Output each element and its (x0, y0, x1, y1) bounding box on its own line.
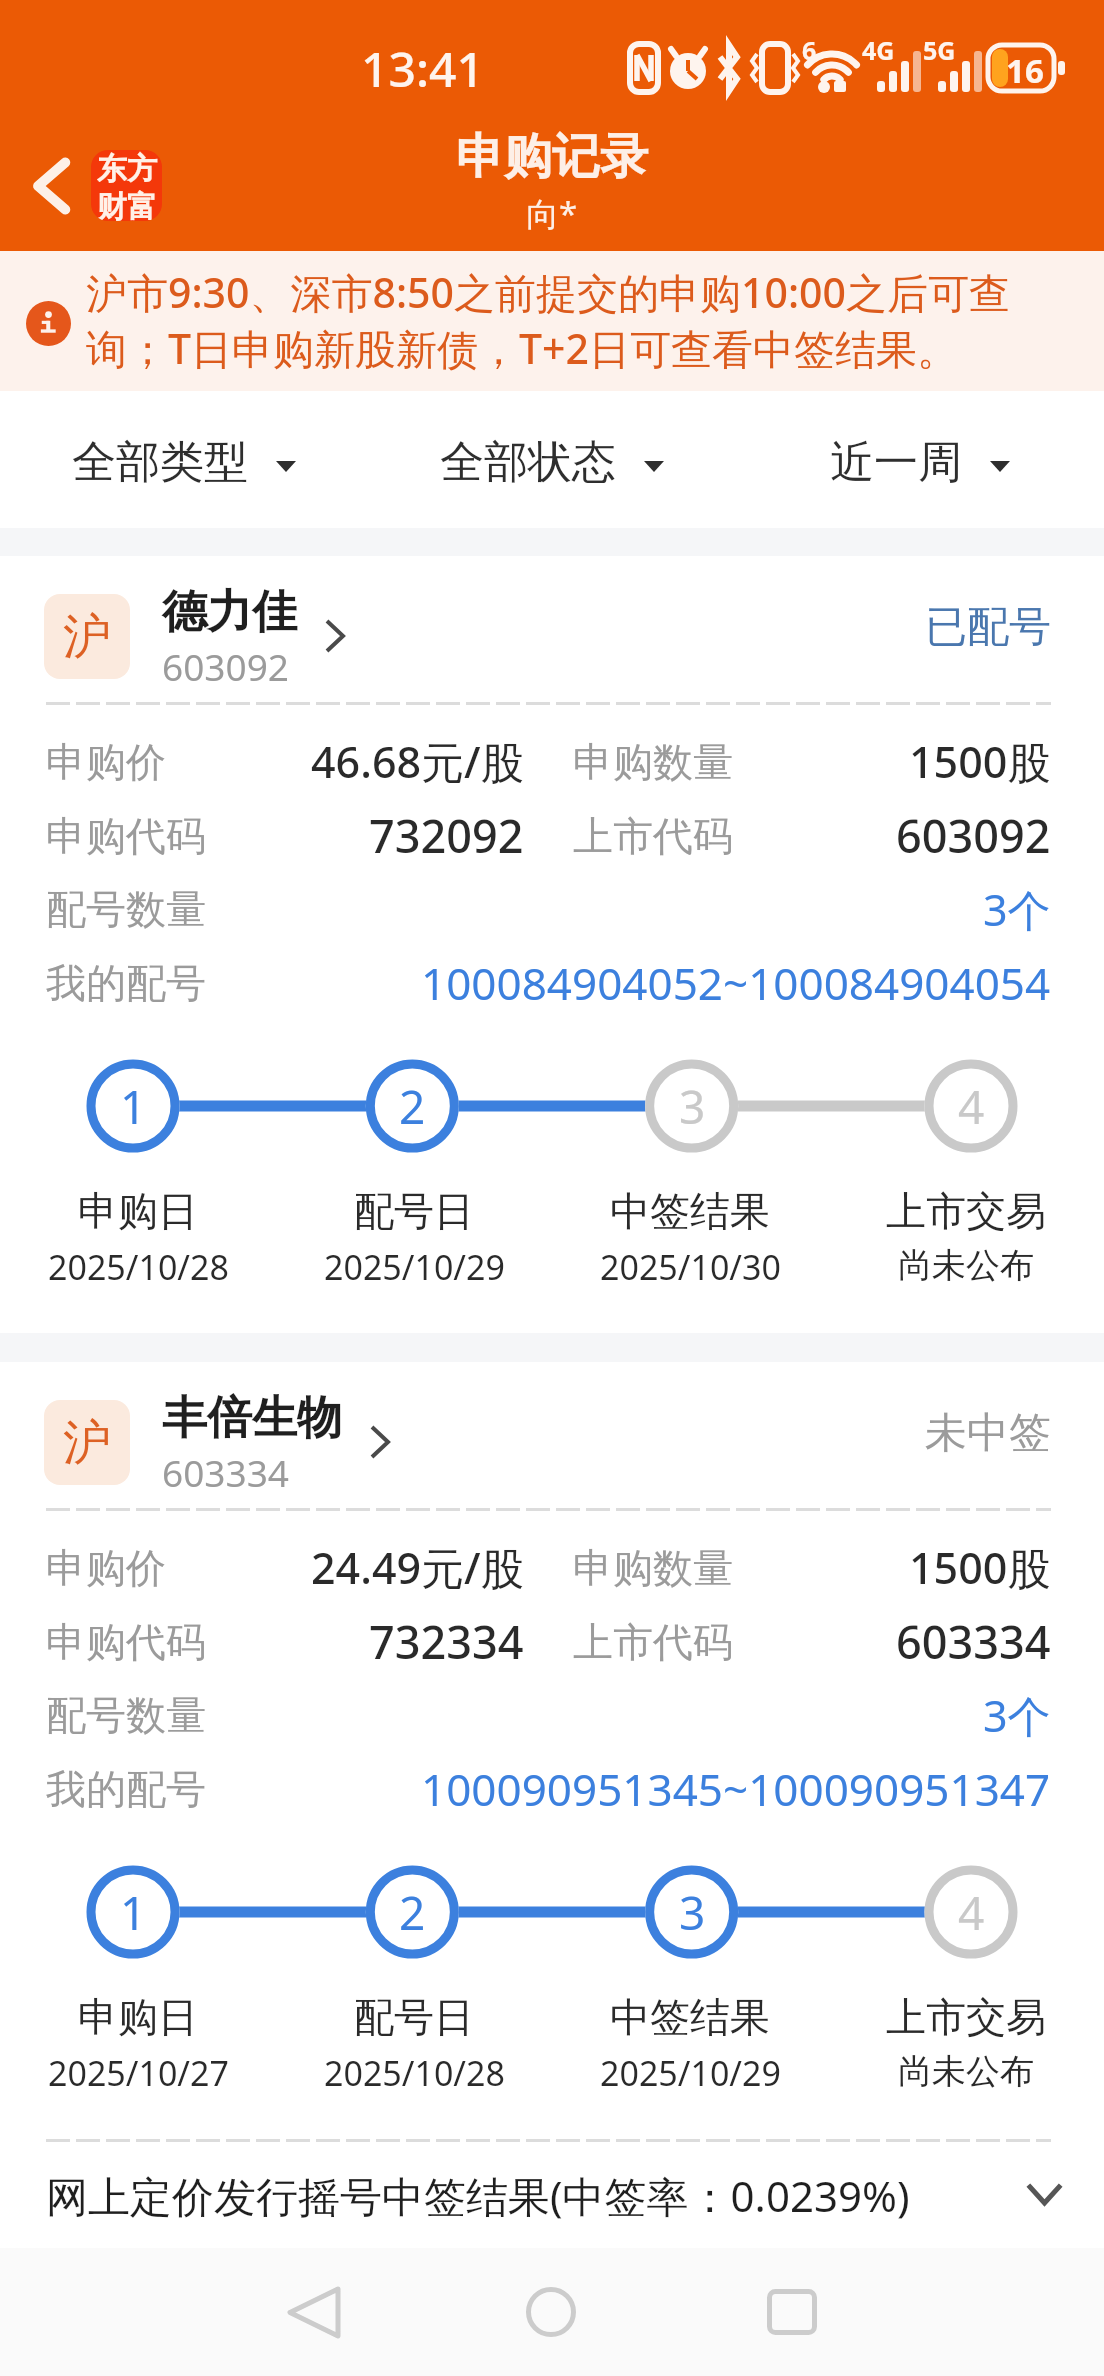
staticText: 配号日 (354, 1186, 474, 1236)
button[interactable]: Back (261, 2263, 365, 2361)
staticText: 603092 (162, 641, 289, 689)
staticText: 4G (862, 33, 895, 67)
staticText: 申购价 (46, 737, 166, 787)
staticText: 申购价 (46, 1543, 166, 1593)
staticText: 3 (679, 1075, 706, 1138)
staticText: 4 (958, 1075, 985, 1138)
staticText: 2025/10/29 (600, 2050, 781, 2096)
staticText: 全部类型 (72, 435, 248, 490)
staticText: 16 (1006, 48, 1044, 93)
staticText: 2025/10/29 (324, 1244, 505, 1290)
button[interactable]: Recent apps (740, 2264, 844, 2360)
staticText: 732092 (369, 805, 524, 866)
staticText: 德力佳 (162, 584, 297, 641)
staticText: 配号日 (354, 1992, 474, 2042)
staticText: 3 (679, 1881, 706, 1944)
staticText: 申购代码 (46, 1617, 206, 1667)
button[interactable]: 沪 (46, 1390, 1051, 1495)
staticText: 732334 (369, 1611, 524, 1672)
button[interactable]: 沪 (46, 584, 1051, 689)
staticText: 网上定价发行摇号中签结果(中签率：0.0239%) (46, 2167, 910, 2224)
staticText: 东方 (97, 150, 157, 188)
staticText: 沪 (63, 607, 111, 667)
staticText: 申购记录 (456, 127, 648, 187)
staticText: 配号数量 (46, 1690, 206, 1740)
staticText: 询；T日申购新股新债，T+2日可查看中签结果。 (86, 320, 958, 376)
button[interactable]: 近一周 (736, 391, 1104, 528)
staticText: 603334 (162, 1447, 289, 1495)
staticText: 中签结果 (610, 1186, 770, 1236)
staticText: 中签结果 (610, 1992, 770, 2042)
staticText: 申购日 (78, 1186, 198, 1236)
staticText: 申购日 (78, 1992, 198, 2042)
staticText: 1500股 (909, 732, 1051, 791)
staticText: 2025/10/27 (48, 2050, 229, 2096)
staticText: 上市代码 (573, 811, 733, 861)
staticText: 2025/10/28 (48, 1244, 229, 1290)
staticText: 100084904052~100084904054 (421, 953, 1051, 1013)
staticText: 2 (399, 1881, 426, 1944)
button[interactable]: 网上定价发行摇号中签结果(中签率：0.0239%) (46, 2142, 1058, 2248)
staticText: 3个 (983, 880, 1051, 939)
staticText: 近一周 (830, 435, 962, 490)
staticText: 申购数量 (573, 1543, 733, 1593)
button[interactable]: Home (499, 2264, 603, 2360)
staticText: 1 (120, 1075, 147, 1138)
staticText: 6 (802, 33, 817, 67)
button[interactable]: 全部状态 (368, 391, 736, 528)
staticText: 5G (923, 33, 956, 67)
staticText: 4 (958, 1881, 985, 1944)
staticText: 申购数量 (573, 737, 733, 787)
staticText: 向* (526, 191, 578, 236)
staticText: 未中签 (925, 1407, 1051, 1460)
staticText: 我的配号 (46, 958, 206, 1008)
staticText: 2025/10/30 (600, 1244, 781, 1290)
staticText: 申购代码 (46, 811, 206, 861)
staticText: 上市代码 (573, 1617, 733, 1667)
staticText: 603092 (896, 805, 1051, 866)
staticText: 尚未公布 (898, 1244, 1034, 1287)
button[interactable]: 全部类型 (0, 391, 368, 528)
staticText: 我的配号 (46, 1764, 206, 1814)
staticText: 3个 (983, 1686, 1051, 1745)
staticText: 1500股 (909, 1538, 1051, 1597)
staticText: 13:41 (361, 36, 484, 101)
staticText: 丰倍生物 (162, 1390, 342, 1447)
staticText: 2025/10/28 (324, 2050, 505, 2096)
staticText: 上市交易 (886, 1186, 1046, 1236)
staticText: 上市交易 (886, 1992, 1046, 2042)
button[interactable]: Back (24, 132, 172, 227)
staticText: 沪市9:30、深市8:50之前提交的申购10:00之后可查 (86, 264, 1010, 320)
staticText: 24.49元/股 (311, 1538, 524, 1597)
staticText: 尚未公布 (898, 2050, 1034, 2093)
staticText: 全部状态 (440, 435, 616, 490)
staticText: 2 (399, 1075, 426, 1138)
staticText: 财富 (97, 188, 157, 221)
staticText: 46.68元/股 (311, 732, 524, 791)
staticText: 603334 (896, 1611, 1051, 1672)
staticText: 100090951345~100090951347 (421, 1759, 1051, 1819)
staticText: 已配号 (925, 601, 1051, 654)
staticText: 配号数量 (46, 884, 206, 934)
staticText: 1 (120, 1881, 147, 1944)
staticText: 沪 (63, 1413, 111, 1473)
